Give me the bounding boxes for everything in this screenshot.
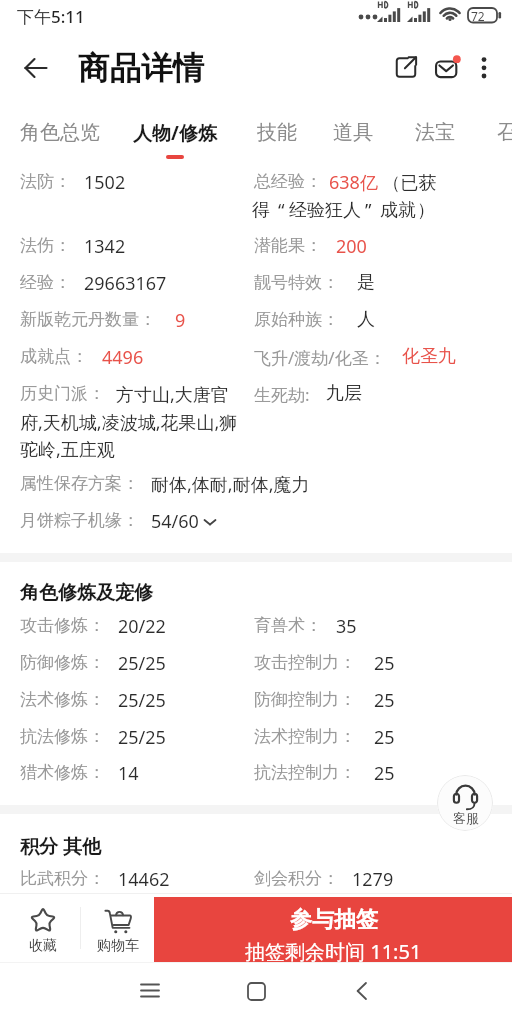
staticText: 生死劫: bbox=[254, 383, 310, 406]
staticText: 技能 bbox=[257, 120, 297, 145]
staticText: 20/22 bbox=[118, 614, 166, 639]
staticText: 总经验： bbox=[254, 171, 322, 192]
staticText: 1502 bbox=[84, 170, 126, 195]
staticText: 54/60 bbox=[151, 509, 199, 534]
staticText: 防御控制力： bbox=[254, 689, 356, 710]
staticText: 角色总览 bbox=[20, 120, 100, 145]
staticText: 防御修炼： bbox=[20, 652, 105, 673]
staticText: 猎术修炼： bbox=[20, 762, 105, 783]
staticText: 参与抽签 bbox=[290, 906, 378, 934]
staticText: 积分 其他 bbox=[20, 833, 101, 859]
staticText: 抗法控制力： bbox=[254, 762, 356, 783]
button[interactable]: More options bbox=[469, 52, 499, 82]
staticText: 25/25 bbox=[118, 725, 166, 750]
staticText: 耐体,体耐,耐体,魔力 bbox=[151, 472, 310, 497]
button[interactable]: Messages bbox=[429, 48, 467, 86]
staticText: 是 bbox=[357, 271, 375, 294]
staticText: 府,天机城,凌波城,花果山,狮 bbox=[20, 410, 238, 435]
staticText: 历史门派： bbox=[20, 383, 105, 404]
staticText: 人 bbox=[357, 308, 375, 331]
staticText: 29663167 bbox=[84, 271, 167, 296]
staticText: 九层 bbox=[326, 382, 362, 405]
staticText: 攻击控制力： bbox=[254, 652, 356, 673]
staticText: 购物车 bbox=[97, 937, 139, 955]
staticText: 得 bbox=[252, 199, 270, 222]
staticText: 25 bbox=[374, 688, 395, 713]
button[interactable]: Back bbox=[340, 969, 384, 1013]
staticText: 收藏 bbox=[29, 937, 57, 955]
staticText: ） bbox=[417, 199, 435, 222]
staticText: 72 bbox=[471, 8, 485, 24]
staticText: 飞升/渡劫/化圣： bbox=[254, 346, 386, 369]
staticText: 成就点： bbox=[20, 346, 88, 367]
staticText: 商品详情 bbox=[78, 49, 204, 89]
staticText: 法宝 bbox=[415, 120, 455, 145]
staticText: 25 bbox=[374, 725, 395, 750]
button[interactable]: 法宝 bbox=[415, 94, 455, 164]
staticText: 靓号特效： bbox=[254, 272, 339, 293]
staticText: 638亿 （已获 bbox=[329, 170, 437, 195]
staticText: 属性保存方案： bbox=[20, 473, 139, 494]
staticText: 化圣九 bbox=[402, 345, 456, 368]
staticText: 法术修炼： bbox=[20, 689, 105, 710]
staticText: 抗法修炼： bbox=[20, 726, 105, 747]
button[interactable]: 角色总览 bbox=[20, 94, 100, 164]
staticText: 客服 bbox=[453, 810, 479, 826]
staticText: 方寸山,大唐官 bbox=[116, 382, 229, 407]
staticText: 角色修炼及宠修 bbox=[20, 581, 153, 605]
staticText: 25/25 bbox=[118, 688, 166, 713]
button[interactable]: 客服 Customer Service bbox=[437, 775, 493, 831]
staticText: 驼岭,五庄观 bbox=[20, 437, 115, 462]
staticText: 200 bbox=[336, 234, 367, 259]
staticText: 法术控制力： bbox=[254, 726, 356, 747]
staticText: 1342 bbox=[84, 234, 126, 259]
staticText: 月饼粽子机缘： bbox=[20, 510, 139, 531]
staticText: 经验： bbox=[20, 272, 71, 293]
staticText: 下午5:11 bbox=[17, 5, 85, 28]
button[interactable]: 收藏 bbox=[3, 893, 83, 963]
staticText: 25/25 bbox=[118, 651, 166, 676]
staticText: 法防： bbox=[20, 171, 71, 192]
staticText: 35 bbox=[336, 614, 357, 639]
staticText: 1279 bbox=[352, 867, 394, 892]
button[interactable]: 技能 bbox=[257, 94, 297, 164]
staticText: 召 bbox=[497, 120, 512, 145]
staticText: 14 bbox=[118, 761, 139, 786]
staticText: 法伤： bbox=[20, 235, 71, 256]
button[interactable]: Back bbox=[18, 50, 54, 86]
staticText: 成就 bbox=[380, 199, 416, 222]
staticText: 14462 bbox=[118, 867, 170, 892]
staticText: 经验狂人 bbox=[289, 199, 361, 222]
staticText: “ bbox=[278, 198, 285, 223]
button[interactable]: 参与抽签 bbox=[154, 897, 512, 962]
button[interactable]: Recent apps bbox=[128, 969, 172, 1013]
staticText: 抽签剩余时间 11:51 bbox=[245, 938, 422, 962]
button[interactable]: 道具 bbox=[333, 94, 373, 164]
button[interactable]: Home bbox=[234, 969, 278, 1013]
staticText: 潜能果： bbox=[254, 235, 322, 256]
button[interactable]: Share bbox=[387, 48, 425, 86]
staticText: 人物/修炼 bbox=[133, 120, 217, 146]
staticText: 剑会积分： bbox=[254, 868, 339, 889]
staticText: 攻击修炼： bbox=[20, 615, 105, 636]
button[interactable]: 54/60 bbox=[151, 509, 217, 534]
staticText: 25 bbox=[374, 651, 395, 676]
button[interactable]: 购物车 bbox=[81, 893, 154, 963]
staticText: 比武积分： bbox=[20, 868, 105, 889]
button[interactable]: 召 bbox=[497, 94, 512, 164]
staticText: 新版乾元丹数量： bbox=[20, 309, 156, 330]
staticText: 道具 bbox=[333, 120, 373, 145]
staticText: 育兽术： bbox=[254, 615, 322, 636]
button[interactable]: 人物/修炼 bbox=[133, 94, 217, 164]
staticText: 25 bbox=[374, 761, 395, 786]
staticText: 原始种族： bbox=[254, 309, 339, 330]
staticText: 9 bbox=[175, 308, 186, 333]
staticText: ” bbox=[365, 198, 372, 223]
staticText: 4496 bbox=[102, 345, 144, 370]
